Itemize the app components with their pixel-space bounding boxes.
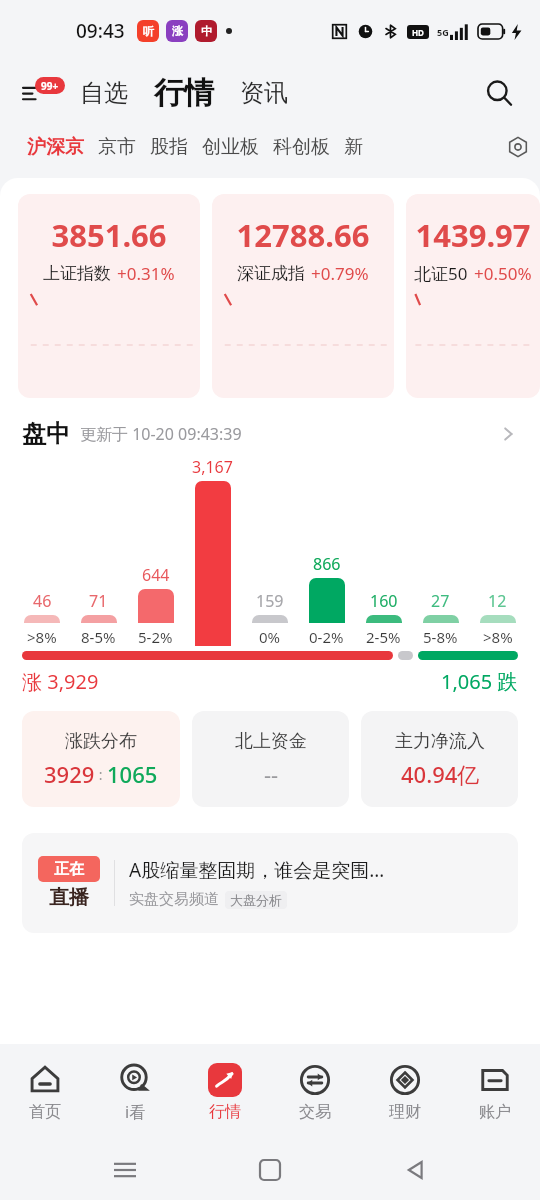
staticText: 0% bbox=[259, 627, 281, 647]
staticText: 1,065 跌 bbox=[441, 668, 518, 695]
button[interactable]: 12788.66 bbox=[212, 194, 394, 398]
staticText: 160 bbox=[370, 590, 398, 612]
staticText: 沪深京 bbox=[27, 135, 84, 159]
staticText: 正在 bbox=[54, 860, 84, 879]
staticText: 中 bbox=[201, 24, 212, 38]
button[interactable]: 理财 bbox=[360, 1044, 450, 1140]
staticText: 涨 3,929 bbox=[22, 668, 99, 695]
button[interactable]: More tabs bbox=[496, 124, 540, 170]
button[interactable]: 正在 bbox=[22, 833, 518, 933]
staticText: 99+ bbox=[41, 79, 59, 93]
staticText: 交易 bbox=[299, 1102, 331, 1122]
staticText: 自选 bbox=[80, 78, 128, 108]
button[interactable]: 首页 bbox=[0, 1044, 90, 1140]
button[interactable]: 盘中 bbox=[22, 412, 518, 456]
staticText: 0-2% bbox=[309, 627, 344, 647]
staticText: 更新于 10-20 09:43:39 bbox=[80, 423, 242, 445]
staticText: 09:43 bbox=[76, 18, 125, 44]
staticText: 北证50 bbox=[414, 262, 468, 285]
staticText: 2-5% bbox=[366, 627, 401, 647]
button[interactable]: 科创板 bbox=[266, 131, 337, 163]
button[interactable]: 行情 bbox=[180, 1044, 270, 1140]
button[interactable]: Menu bbox=[22, 74, 60, 112]
button[interactable]: 涨跌分布 bbox=[22, 711, 180, 807]
button[interactable]: Recents bbox=[105, 1150, 145, 1190]
staticText: 12788.66 bbox=[212, 214, 394, 256]
staticText: 行情 bbox=[209, 1102, 241, 1122]
staticText: 理财 bbox=[389, 1102, 421, 1122]
staticText: 5G bbox=[437, 26, 449, 38]
staticText: +0.31% bbox=[117, 262, 175, 285]
button[interactable]: 创业板 bbox=[195, 131, 266, 163]
staticText: 盘中 bbox=[22, 419, 70, 449]
staticText: 资讯 bbox=[240, 78, 288, 108]
staticText: 3,167 bbox=[192, 456, 233, 478]
staticText: 账户 bbox=[479, 1102, 511, 1122]
staticText: 12 bbox=[488, 590, 507, 612]
staticText: 1439.97 bbox=[406, 214, 540, 256]
button[interactable]: 1439.97 bbox=[406, 194, 540, 398]
button[interactable]: 资讯 bbox=[236, 78, 292, 108]
button[interactable]: Home bbox=[250, 1150, 290, 1190]
button[interactable]: 行情 bbox=[150, 74, 218, 112]
staticText: 首页 bbox=[29, 1102, 61, 1122]
button[interactable]: 自选 bbox=[76, 78, 132, 108]
button[interactable]: 沪深京 bbox=[20, 131, 91, 163]
staticText: 科创板 bbox=[273, 135, 330, 159]
staticText: 3929 bbox=[44, 759, 95, 789]
staticText: : bbox=[95, 765, 107, 784]
staticText: 159 bbox=[256, 590, 284, 612]
staticText: 涨 bbox=[172, 24, 183, 38]
staticText: 直播 bbox=[49, 885, 89, 910]
staticText: 1065 bbox=[107, 759, 158, 789]
staticText: i看 bbox=[125, 1101, 146, 1123]
staticText: 股指 bbox=[150, 135, 188, 159]
staticText: 5-8% bbox=[423, 627, 458, 647]
staticText: 主力净流入 bbox=[395, 730, 485, 753]
staticText: 深证成指 bbox=[237, 263, 305, 284]
staticText: 8-5% bbox=[81, 627, 116, 647]
staticText: 实盘交易频道 bbox=[129, 890, 219, 909]
staticText: -- bbox=[264, 759, 279, 789]
staticText: 京市 bbox=[98, 135, 136, 159]
staticText: 27 bbox=[431, 590, 450, 612]
button[interactable]: 新 bbox=[337, 131, 370, 163]
staticText: 涨跌分布 bbox=[65, 730, 137, 753]
staticText: 40.94亿 bbox=[401, 759, 480, 789]
button[interactable]: 京市 bbox=[91, 131, 143, 163]
button[interactable]: 账户 bbox=[450, 1044, 540, 1140]
button[interactable]: 交易 bbox=[270, 1044, 360, 1140]
button[interactable]: 北上资金 bbox=[192, 711, 349, 807]
button[interactable]: 股指 bbox=[143, 131, 195, 163]
staticText: >8% bbox=[27, 627, 57, 647]
staticText: 行情 bbox=[154, 74, 214, 112]
staticText: 866 bbox=[313, 553, 341, 575]
staticText: 听 bbox=[143, 24, 154, 38]
button[interactable]: Search bbox=[478, 72, 520, 114]
staticText: 71 bbox=[89, 590, 108, 612]
staticText: +0.79% bbox=[311, 262, 369, 285]
staticText: 644 bbox=[142, 564, 170, 586]
staticText: 大盘分析 bbox=[230, 892, 282, 908]
staticText: 5-2% bbox=[138, 627, 173, 647]
staticText: +0.50% bbox=[474, 262, 532, 285]
button[interactable]: Back bbox=[395, 1150, 435, 1190]
staticText: 创业板 bbox=[202, 135, 259, 159]
button[interactable]: 3851.66 bbox=[18, 194, 200, 398]
staticText: 3851.66 bbox=[18, 214, 200, 256]
button[interactable]: i看 bbox=[90, 1044, 180, 1140]
button[interactable]: 主力净流入 bbox=[361, 711, 518, 807]
staticText: 上证指数 bbox=[43, 263, 111, 284]
staticText: 北上资金 bbox=[235, 730, 307, 753]
staticText: HD bbox=[412, 27, 424, 38]
staticText: A股缩量整固期，谁会是突围… bbox=[129, 857, 385, 883]
staticText: 新 bbox=[344, 135, 363, 159]
staticText: 46 bbox=[33, 590, 52, 612]
staticText: >8% bbox=[483, 627, 513, 647]
